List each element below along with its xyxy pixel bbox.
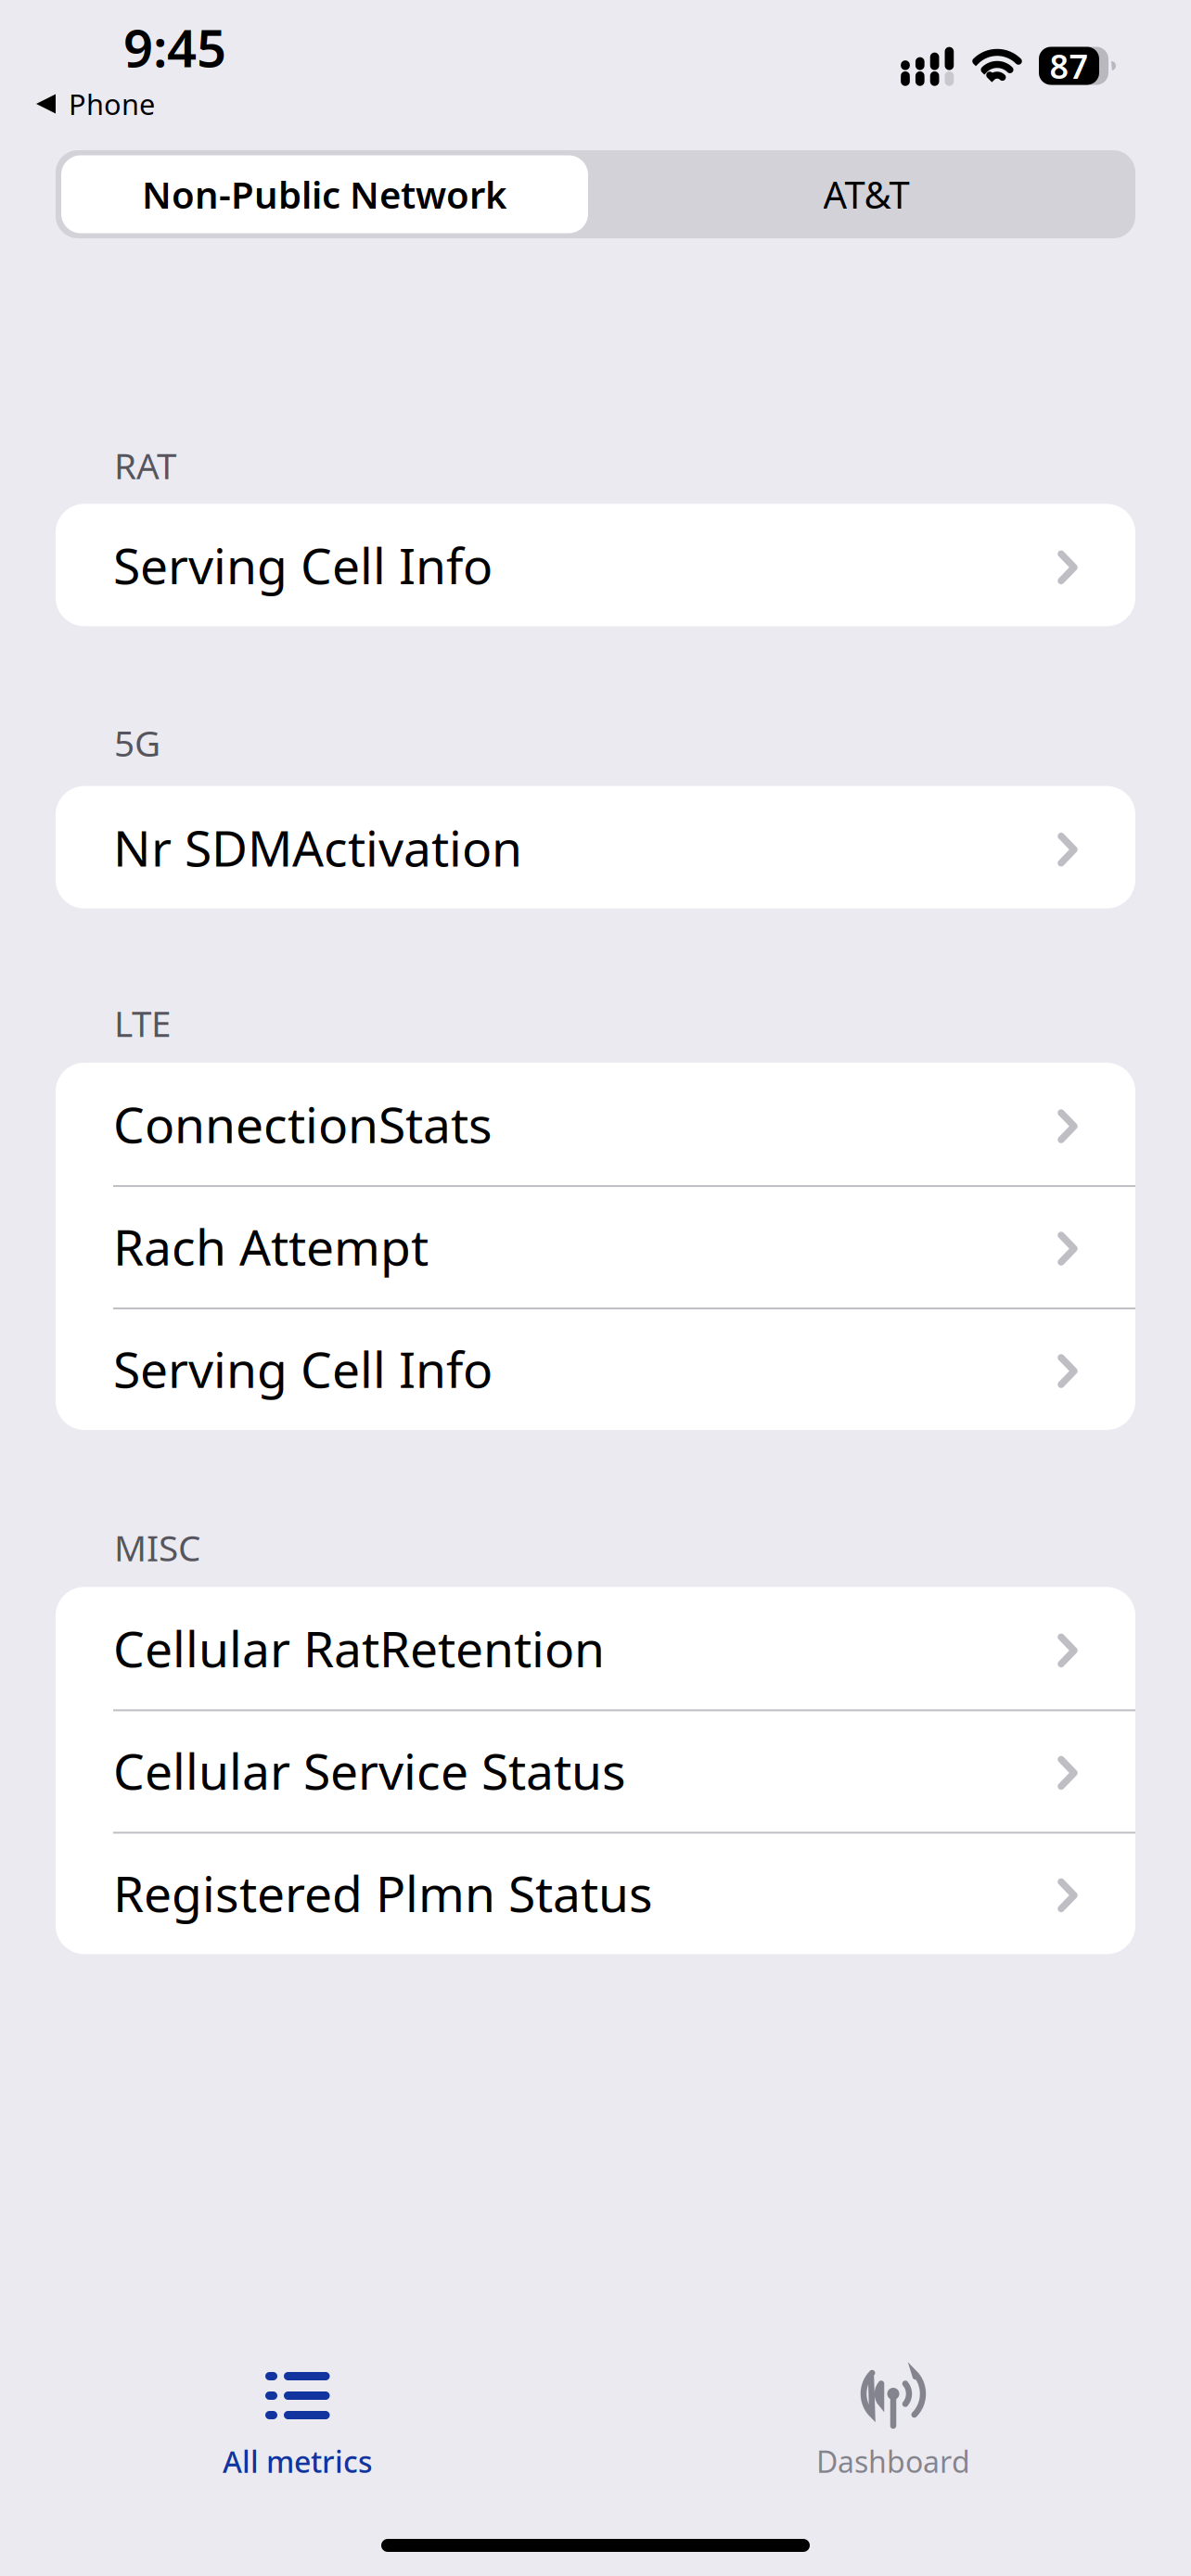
staticText: Cellular Service Status <box>113 1738 626 1803</box>
staticText: Dashboard <box>816 2442 970 2481</box>
button[interactable]: Non-Public Network <box>61 155 588 233</box>
button[interactable]: All metrics <box>0 2372 595 2502</box>
staticText: Serving Cell Info <box>113 532 493 598</box>
button[interactable]: ConnectionStats <box>56 1063 1135 1185</box>
staticText: Nr SDMActivation <box>113 814 522 880</box>
button[interactable]: Registered Plmn Status <box>56 1832 1135 1954</box>
staticText: All metrics <box>223 2442 373 2481</box>
staticText: 87 <box>1050 44 1089 88</box>
button[interactable]: Nr SDMActivation <box>56 786 1135 908</box>
staticText: Registered Plmn Status <box>113 1860 653 1926</box>
staticText: AT&T <box>823 170 909 219</box>
staticText: Rach Attempt <box>113 1213 429 1279</box>
button[interactable]: AT&T <box>603 155 1130 233</box>
staticText: MISC <box>114 1524 200 1571</box>
staticText: LTE <box>114 999 171 1047</box>
button[interactable]: Cellular RatRetention <box>56 1587 1135 1709</box>
button[interactable]: Cellular Service Status <box>56 1709 1135 1832</box>
staticText: ConnectionStats <box>113 1091 493 1157</box>
staticText: 9:45 <box>123 13 226 82</box>
staticText: Non-Public Network <box>142 170 507 219</box>
button[interactable]: Dashboard <box>595 2372 1191 2502</box>
staticText: Cellular RatRetention <box>113 1615 605 1681</box>
button[interactable]: Serving Cell Info <box>56 1307 1135 1430</box>
button[interactable]: Serving Cell Info <box>56 504 1135 626</box>
button[interactable]: Phone <box>0 81 173 127</box>
staticText: Serving Cell Info <box>113 1336 493 1401</box>
staticText: RAT <box>114 441 176 489</box>
staticText: 5G <box>114 719 160 766</box>
button[interactable]: Rach Attempt <box>56 1185 1135 1307</box>
staticText: Phone <box>69 85 155 123</box>
